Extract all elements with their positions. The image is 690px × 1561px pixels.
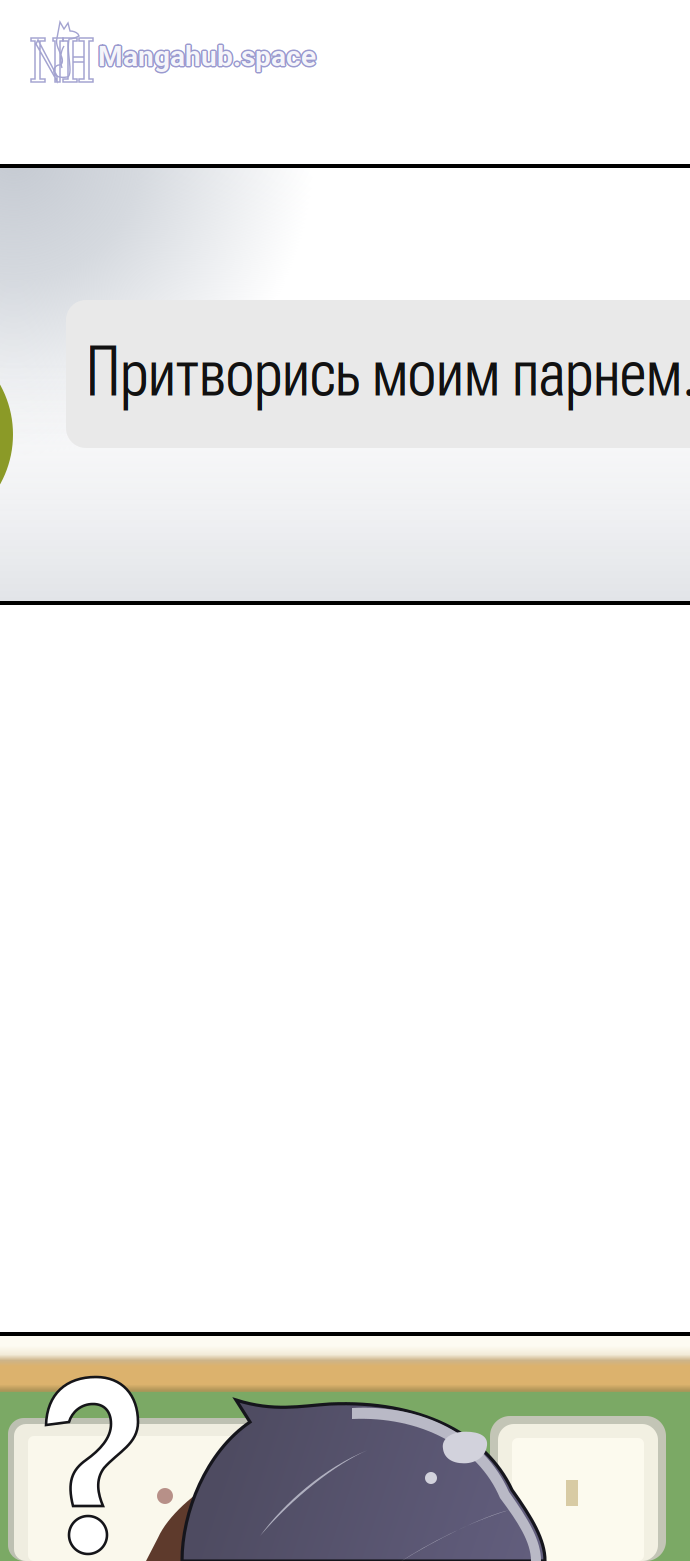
staticText: Mangahub.space xyxy=(99,41,317,74)
staticText: Mangahub.space xyxy=(98,41,316,74)
staticText: Mangahub.space xyxy=(99,40,317,73)
staticText: Mangahub.space xyxy=(97,39,315,72)
staticText: Mangahub.space xyxy=(98,40,316,73)
staticText: Притворись моим парнем. xyxy=(86,330,690,413)
staticText: Mangahub.space xyxy=(96,40,314,73)
staticText: Mangahub.space xyxy=(97,41,315,74)
staticText: Mangahub.space xyxy=(98,38,316,71)
staticText: Mangahub.space xyxy=(99,39,317,72)
